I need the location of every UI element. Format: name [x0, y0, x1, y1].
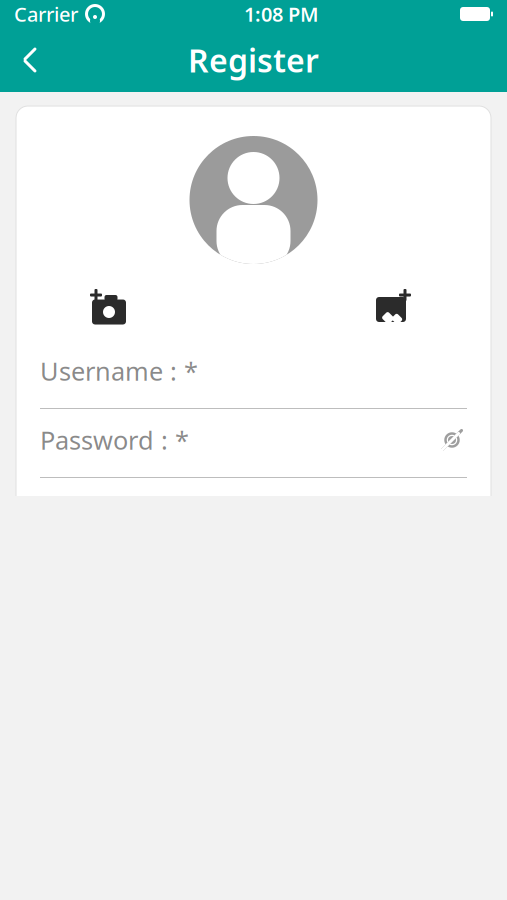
button[interactable]: Take photo	[86, 286, 132, 330]
button[interactable]: Show password	[437, 425, 467, 455]
staticText: Register	[188, 39, 319, 81]
staticText: Username : *	[40, 354, 198, 388]
staticText: 1:08 PM	[244, 1, 319, 27]
staticText: Confirm Password : *	[40, 492, 292, 526]
staticText: Password : *	[40, 423, 189, 457]
button[interactable]: Back	[8, 38, 52, 82]
staticText: Carrier	[14, 1, 78, 27]
button[interactable]: Choose photo from library	[369, 286, 413, 330]
button[interactable]: Show password	[437, 494, 467, 524]
